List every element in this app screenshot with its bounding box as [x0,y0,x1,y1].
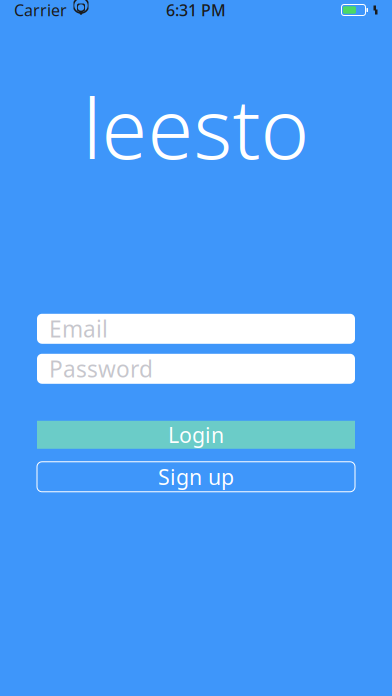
staticText: Password [49,354,153,384]
button[interactable]: Email [37,314,355,344]
staticText: Carrier [14,0,67,21]
staticText: 6:31 PM [166,0,226,21]
staticText: Email [49,314,108,344]
staticText: Login [168,421,224,449]
staticText: Sign up [158,463,234,491]
staticText: leesto [82,72,309,182]
button[interactable]: Login [37,421,355,449]
button[interactable]: Password [37,354,355,384]
button[interactable]: Sign up [37,462,355,492]
